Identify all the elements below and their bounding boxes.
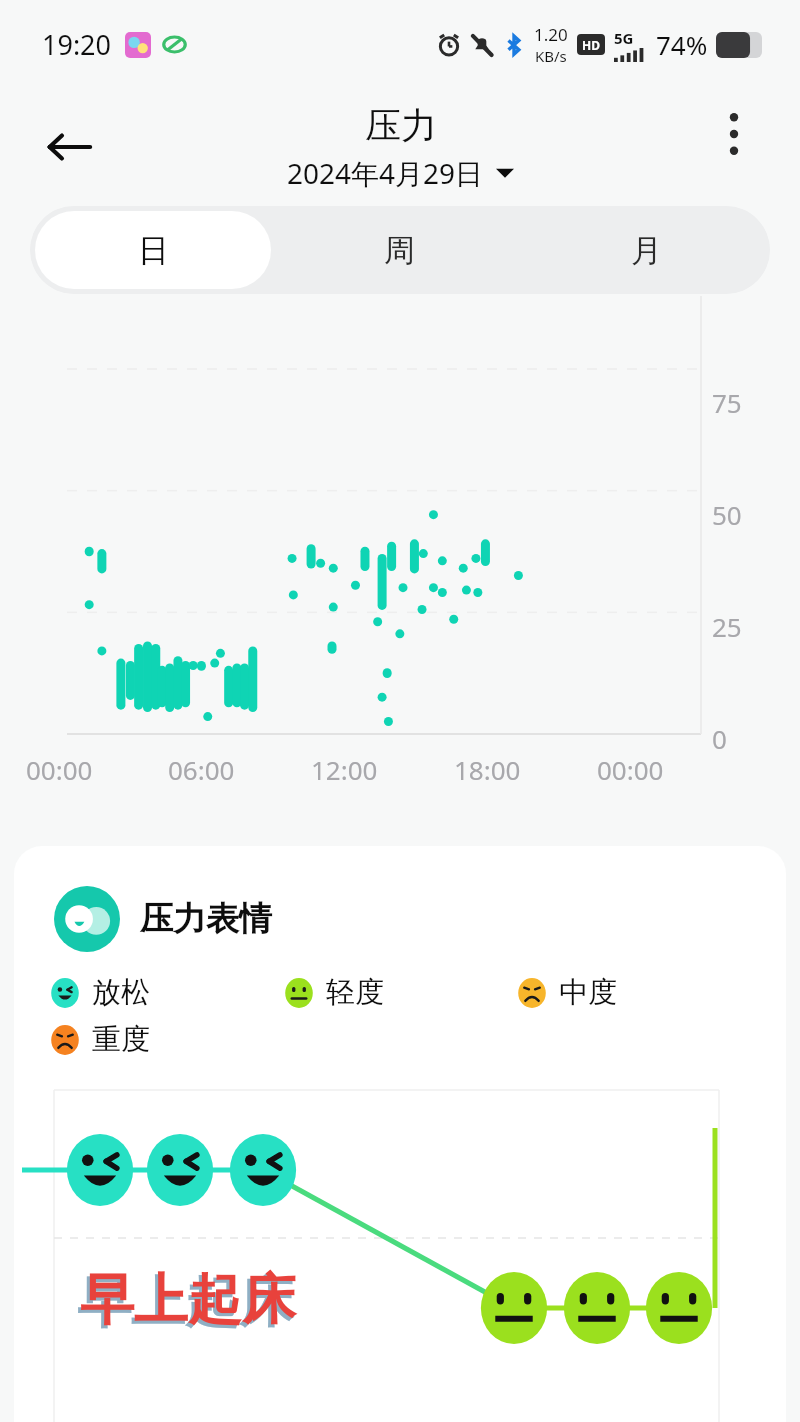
staticText: 75 bbox=[712, 385, 742, 420]
staticText: 74% bbox=[656, 27, 708, 62]
staticText: 放松 bbox=[92, 974, 150, 1011]
button[interactable]: Back bbox=[36, 114, 102, 180]
staticText: 06:00 bbox=[168, 752, 235, 787]
staticText: 周 bbox=[384, 231, 415, 270]
staticText: 压力 bbox=[365, 103, 437, 148]
staticText: 2024年4月29日 bbox=[287, 154, 484, 192]
button[interactable]: More options bbox=[704, 104, 764, 164]
button[interactable]: 月 bbox=[528, 211, 765, 289]
staticText: 12:00 bbox=[311, 752, 378, 787]
staticText: 压力表情 bbox=[140, 898, 272, 940]
staticText: 25 bbox=[712, 609, 742, 644]
staticText: 50 bbox=[712, 497, 742, 532]
button[interactable]: 日 bbox=[35, 211, 271, 289]
staticText: 1.20 bbox=[534, 23, 568, 46]
button[interactable]: 压力 bbox=[287, 103, 514, 192]
staticText: 轻度 bbox=[326, 974, 384, 1011]
button[interactable]: 压力表情 bbox=[54, 886, 272, 952]
staticText: 早上起床 bbox=[77, 1269, 293, 1337]
staticText: 0 bbox=[712, 721, 727, 756]
staticText: HD bbox=[582, 37, 600, 53]
staticText: 中度 bbox=[559, 974, 617, 1011]
staticText: 重度 bbox=[92, 1021, 150, 1058]
staticText: 00:00 bbox=[26, 752, 93, 787]
staticText: 18:00 bbox=[454, 752, 521, 787]
staticText: 00:00 bbox=[597, 752, 664, 787]
staticText: 早上起床 bbox=[80, 1266, 296, 1334]
button[interactable]: 周 bbox=[281, 211, 518, 289]
staticText: 月 bbox=[631, 231, 662, 270]
staticText: KB/s bbox=[535, 46, 567, 66]
staticText: 日 bbox=[138, 231, 169, 270]
staticText: 19:20 bbox=[42, 26, 112, 63]
staticText: 5G bbox=[614, 28, 634, 48]
